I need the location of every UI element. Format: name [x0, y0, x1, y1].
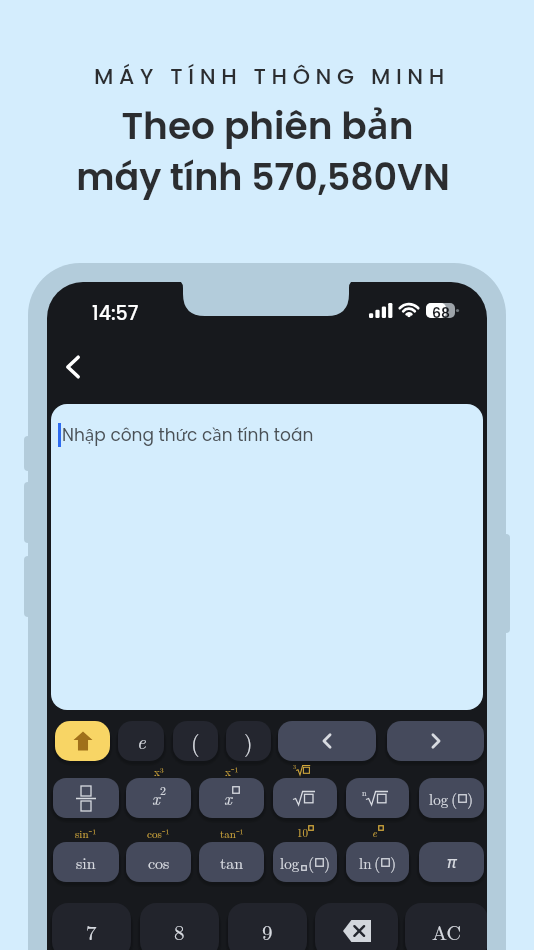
- staticText: sin: [76, 851, 96, 874]
- staticText: ): [324, 851, 331, 874]
- staticText: (: [451, 787, 458, 810]
- button[interactable]: log: [273, 842, 337, 882]
- staticText: ): [467, 787, 474, 810]
- button[interactable]: x: [126, 778, 191, 818]
- staticText: Nhập công thức cần tính toán: [62, 423, 314, 447]
- staticText: 10: [297, 825, 308, 840]
- button[interactable]: e: [118, 721, 164, 761]
- staticText: ): [390, 851, 397, 874]
- button[interactable]: log: [419, 778, 484, 818]
- staticText: n: [362, 787, 367, 798]
- staticText: tan: [220, 851, 244, 874]
- staticText: tan⁻¹: [220, 826, 244, 840]
- staticText: (: [308, 851, 315, 874]
- button[interactable]: [387, 721, 484, 761]
- staticText: MÁY TÍNH THÔNG MINH: [94, 61, 450, 92]
- staticText: e: [372, 825, 378, 840]
- staticText: Theo phiên bản: [121, 99, 414, 152]
- button[interactable]: π: [419, 842, 484, 882]
- staticText: (: [374, 851, 381, 874]
- button[interactable]: (: [173, 721, 218, 761]
- staticText: 14:57: [92, 300, 139, 327]
- button[interactable]: cos: [126, 842, 191, 882]
- button[interactable]: tan: [199, 842, 264, 882]
- button[interactable]: [273, 778, 337, 818]
- staticText: log: [280, 852, 300, 873]
- staticText: sin⁻¹: [75, 826, 97, 840]
- staticText: π: [447, 851, 457, 873]
- button[interactable]: n: [346, 778, 409, 818]
- button[interactable]: AC: [405, 903, 487, 950]
- button[interactable]: [278, 721, 376, 761]
- button[interactable]: 9: [228, 903, 307, 950]
- staticText: 3: [293, 762, 297, 771]
- staticText: e: [137, 728, 146, 755]
- button[interactable]: [53, 778, 119, 818]
- staticText: máy tính 570,580VN: [76, 152, 450, 203]
- staticText: ): [244, 726, 253, 757]
- staticText: log: [429, 788, 449, 809]
- staticText: 8: [174, 916, 185, 946]
- button[interactable]: ): [226, 721, 271, 761]
- staticText: 7: [86, 916, 97, 946]
- staticText: cos: [148, 851, 170, 874]
- button[interactable]: 8: [140, 903, 219, 950]
- button[interactable]: Back: [49, 343, 97, 391]
- staticText: x: [152, 786, 160, 810]
- staticText: x: [224, 786, 232, 810]
- staticText: 2: [160, 782, 166, 799]
- staticText: cos⁻¹: [147, 826, 170, 840]
- button[interactable]: sin: [53, 842, 119, 882]
- staticText: x³: [154, 764, 164, 778]
- staticText: 9: [262, 916, 273, 946]
- button[interactable]: [55, 721, 110, 761]
- button[interactable]: 7: [52, 903, 131, 950]
- button[interactable]: x: [199, 778, 264, 818]
- staticText: ln: [359, 852, 372, 873]
- button[interactable]: ln: [346, 842, 409, 882]
- staticText: x⁻¹: [225, 764, 239, 778]
- button[interactable]: [315, 903, 398, 950]
- staticText: 68: [432, 303, 450, 320]
- staticText: (: [191, 726, 200, 757]
- staticText: AC: [432, 917, 461, 945]
- button[interactable]: Nhập công thức cần tính toán: [51, 404, 483, 710]
